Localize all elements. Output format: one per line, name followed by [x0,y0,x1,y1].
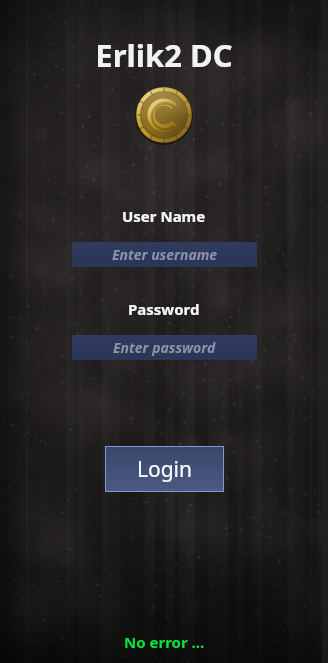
button[interactable]: Login [105,446,224,492]
staticText: User Name [122,206,206,226]
staticText: No error ... [124,632,205,652]
button[interactable]: Enter username [72,242,257,267]
button[interactable]: Enter password [72,335,257,360]
staticText: Enter password [113,338,216,357]
staticText: Enter username [112,245,218,264]
other: App logo coin [135,86,193,144]
staticText: Password [128,299,200,319]
staticText: Erlik2 DC [95,34,233,76]
staticText: Login [137,455,193,484]
